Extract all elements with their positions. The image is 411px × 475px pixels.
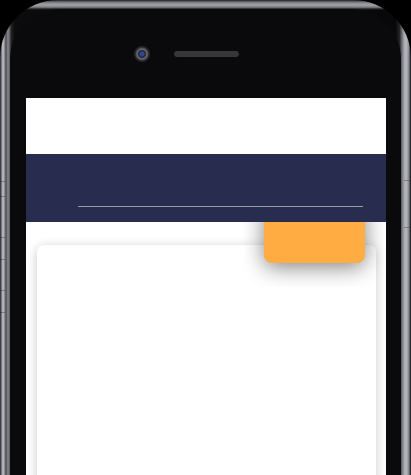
button[interactable]: Compose — [264, 202, 365, 263]
